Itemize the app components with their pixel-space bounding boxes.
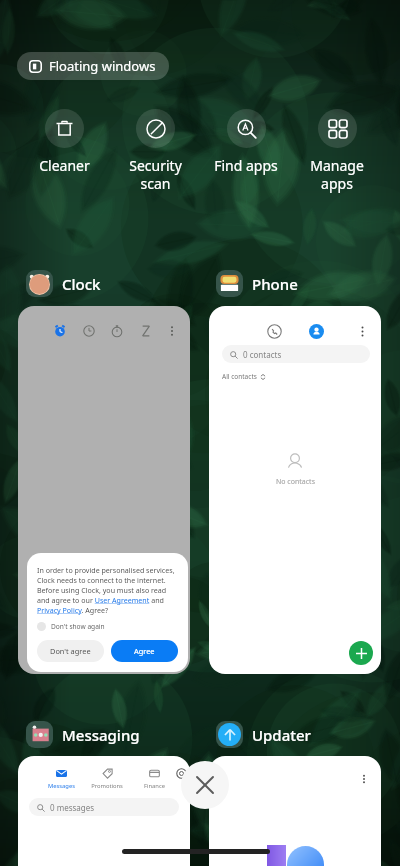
button[interactable]: Updater bbox=[216, 721, 311, 748]
button[interactable]: 0 messages bbox=[29, 798, 179, 816]
staticText: Promotions bbox=[91, 782, 123, 790]
staticText: Messaging bbox=[62, 725, 140, 745]
staticText: Cleaner bbox=[39, 156, 90, 175]
staticText: Messages bbox=[48, 782, 75, 790]
button[interactable]: Floating windows bbox=[17, 52, 169, 80]
staticText: Agree bbox=[134, 646, 155, 656]
staticText: 0 messages bbox=[50, 802, 95, 813]
button[interactable]: Agree bbox=[111, 640, 178, 662]
button[interactable]: Don't agree bbox=[37, 640, 104, 662]
button[interactable] bbox=[209, 756, 381, 866]
staticText: Find apps bbox=[214, 156, 278, 175]
button[interactable]: Messages bbox=[42, 768, 80, 790]
staticText: No contacts bbox=[276, 477, 315, 487]
staticText: Don't show again bbox=[51, 622, 105, 631]
button[interactable]: Cleaner bbox=[21, 109, 107, 175]
staticText: In order to provide personalised service… bbox=[37, 565, 178, 615]
staticText: Clock bbox=[62, 274, 101, 294]
staticText: 0 contacts bbox=[243, 349, 282, 360]
button[interactable]: 0 contacts bbox=[222, 345, 370, 363]
staticText: All contacts bbox=[222, 372, 257, 381]
button[interactable]: Find apps bbox=[203, 109, 289, 175]
button[interactable]: Messages bbox=[18, 756, 190, 866]
button[interactable]: 0 contacts bbox=[209, 306, 381, 674]
button[interactable]: In order to provide personalised service… bbox=[18, 306, 190, 674]
button[interactable]: Don't show again bbox=[37, 622, 105, 631]
button[interactable]: Messaging bbox=[26, 721, 140, 748]
button[interactable]: Manage apps bbox=[294, 109, 380, 193]
staticText: Updater bbox=[252, 725, 311, 745]
staticText: Don't agree bbox=[50, 646, 91, 656]
button[interactable]: Security scan bbox=[112, 109, 198, 193]
button[interactable]: Finance bbox=[135, 768, 173, 790]
staticText: Floating windows bbox=[49, 57, 156, 75]
button[interactable]: Close all bbox=[181, 761, 229, 809]
staticText: Phone bbox=[252, 274, 298, 294]
staticText: Manage apps bbox=[310, 156, 364, 193]
staticText: Security scan bbox=[129, 156, 182, 193]
button[interactable]: All contacts bbox=[222, 372, 266, 381]
button[interactable]: Add contact bbox=[349, 641, 373, 665]
button[interactable]: Phone bbox=[216, 270, 298, 297]
button[interactable]: Clock bbox=[26, 270, 101, 297]
button[interactable]: Promotions bbox=[88, 768, 126, 790]
staticText: Finance bbox=[144, 782, 165, 790]
